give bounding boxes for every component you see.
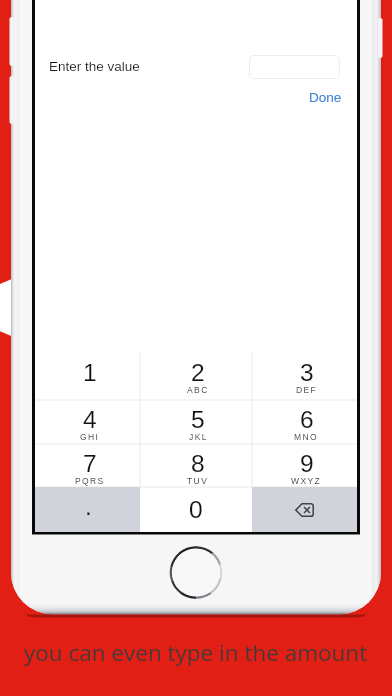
- staticText: JKL: [189, 432, 208, 441]
- staticText: Enter the value: [49, 59, 140, 74]
- staticText: Done: [309, 90, 342, 105]
- staticText: .: [85, 493, 92, 520]
- staticText: 4: [83, 406, 97, 433]
- button[interactable]: 3: [252, 353, 357, 400]
- staticText: 1: [83, 359, 97, 386]
- button[interactable]: 1: [35, 353, 140, 400]
- button[interactable]: 2: [140, 353, 252, 400]
- staticText: DEF: [296, 385, 318, 394]
- staticText: TUV: [187, 476, 209, 485]
- staticText: PQRS: [75, 476, 105, 485]
- staticText: GHI: [80, 432, 100, 441]
- button[interactable]: Done: [309, 90, 342, 105]
- button[interactable]: 0: [140, 487, 252, 532]
- staticText: 9: [300, 450, 314, 477]
- staticText: MNO: [294, 432, 319, 441]
- staticText: 7: [83, 450, 97, 477]
- staticText: 5: [191, 406, 205, 433]
- staticText: WXYZ: [291, 476, 322, 485]
- button[interactable]: 8: [140, 444, 252, 487]
- button[interactable]: 7: [35, 444, 140, 487]
- button[interactable]: 4: [35, 400, 140, 444]
- staticText: 3: [300, 359, 314, 386]
- staticText: 0: [189, 496, 203, 523]
- staticText: ABC: [187, 385, 209, 394]
- staticText: 8: [191, 450, 205, 477]
- button[interactable]: 9: [252, 444, 357, 487]
- staticText: you can even type in the amount: [24, 637, 368, 668]
- button[interactable]: 6: [252, 400, 357, 444]
- staticText: 6: [300, 406, 314, 433]
- button[interactable]: 5: [140, 400, 252, 444]
- staticText: 2: [191, 359, 205, 386]
- button[interactable]: .: [35, 487, 140, 532]
- button[interactable]: Backspace: [252, 487, 357, 532]
